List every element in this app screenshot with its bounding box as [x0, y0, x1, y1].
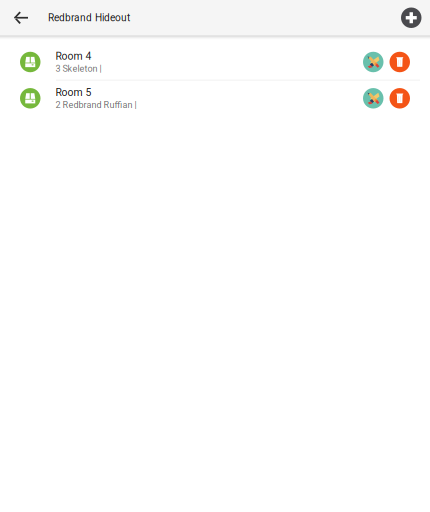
button[interactable]: Room 5 — [0, 80, 363, 116]
button[interactable]: Delete room — [383, 52, 430, 72]
button[interactable]: Edit room — [363, 52, 383, 72]
staticText: Redbrand Hideout — [48, 12, 130, 24]
button[interactable]: Back — [0, 0, 39, 35]
button[interactable]: Edit room — [363, 88, 383, 108]
staticText: Room 4 — [55, 50, 91, 62]
staticText: Room 5 — [55, 86, 91, 99]
staticText: 2 Redbrand Ruffian | — [55, 100, 136, 110]
button[interactable]: Add — [401, 7, 430, 28]
staticText: 3 Skeleton | — [55, 63, 101, 74]
button[interactable]: Delete room — [383, 88, 430, 108]
button[interactable]: Room 4 — [0, 44, 363, 80]
